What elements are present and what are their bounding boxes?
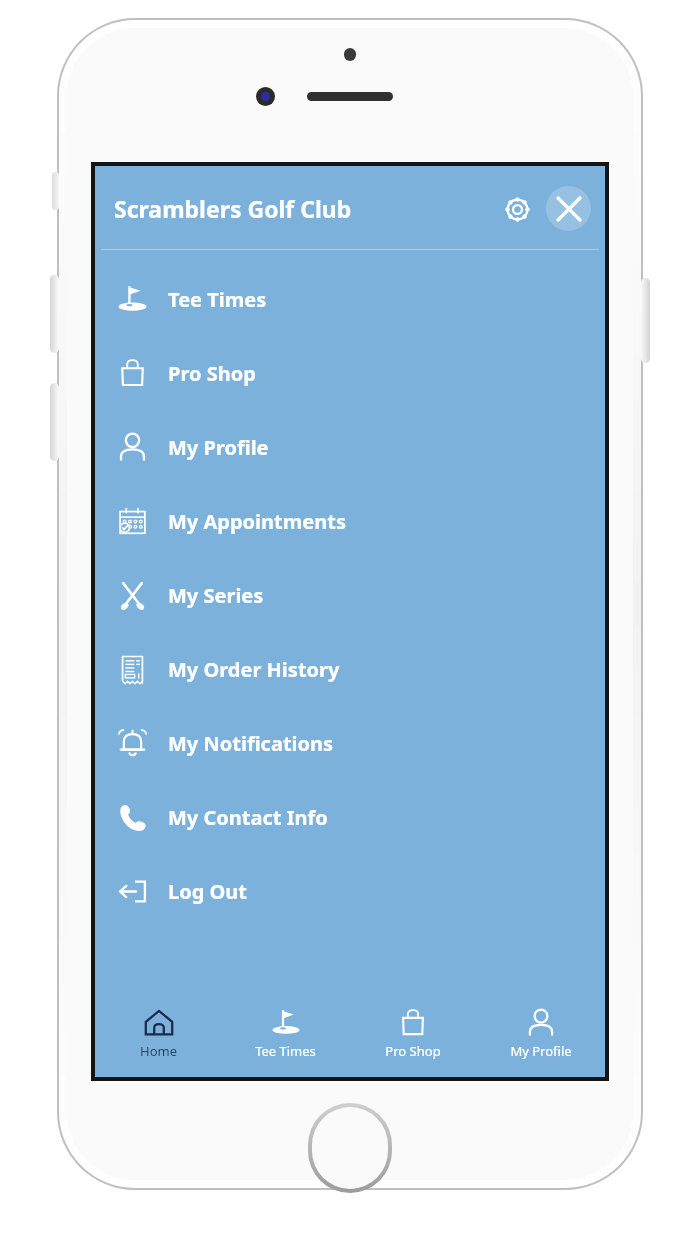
staticText: Tee Times <box>255 1042 316 1060</box>
button[interactable]: My Order History <box>95 632 605 706</box>
staticText: My Order History <box>168 656 340 683</box>
button[interactable]: Settings <box>495 187 539 231</box>
staticText: Log Out <box>168 878 248 905</box>
button[interactable]: My Profile <box>95 410 605 484</box>
button[interactable]: Home <box>95 991 222 1077</box>
staticText: My Profile <box>510 1042 572 1060</box>
staticText: My Series <box>168 582 264 609</box>
button[interactable]: Pro Shop <box>95 336 605 410</box>
button[interactable]: My Profile <box>477 991 605 1077</box>
button[interactable]: Tee Times <box>222 991 349 1077</box>
button[interactable]: Tee Times <box>95 262 605 336</box>
button[interactable]: Close <box>546 186 591 231</box>
staticText: Pro Shop <box>168 360 256 387</box>
button[interactable]: My Series <box>95 558 605 632</box>
staticText: My Profile <box>168 434 269 461</box>
button[interactable]: My Appointments <box>95 484 605 558</box>
button[interactable]: My Notifications <box>95 706 605 780</box>
staticText: Pro Shop <box>385 1042 441 1060</box>
staticText: Tee Times <box>168 286 267 313</box>
staticText: My Appointments <box>168 508 346 535</box>
button[interactable]: My Contact Info <box>95 780 605 854</box>
staticText: My Contact Info <box>168 804 328 831</box>
button[interactable]: Pro Shop <box>349 991 477 1077</box>
staticText: Scramblers Golf Club <box>114 193 352 224</box>
staticText: My Notifications <box>168 730 334 757</box>
staticText: Home <box>140 1042 177 1060</box>
button[interactable]: Log Out <box>95 854 605 928</box>
